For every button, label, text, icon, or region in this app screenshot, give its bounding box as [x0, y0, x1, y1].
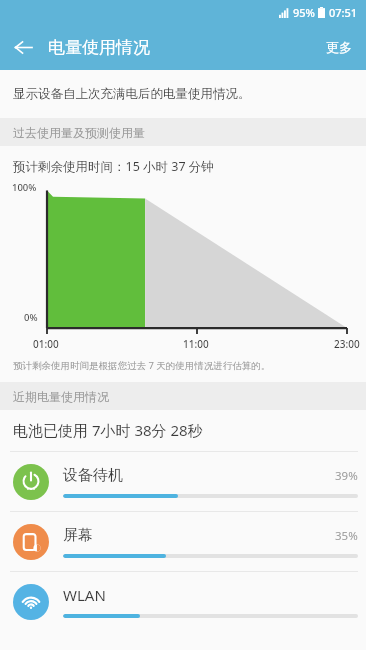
button[interactable]: WLAN — [0, 572, 366, 631]
staticText: 23:00 — [334, 337, 360, 351]
staticText: 0% — [24, 311, 38, 324]
staticText: 01:00 — [33, 337, 59, 351]
staticText: 显示设备自上次充满电后的电量使用情况。 — [13, 86, 251, 102]
staticText: 35% — [335, 528, 358, 544]
staticText: 电量使用情况 — [48, 37, 150, 58]
staticText: 100% — [12, 181, 37, 194]
button[interactable]: 更多 — [312, 24, 366, 70]
staticText: WLAN — [63, 585, 106, 605]
staticText: 近期电量使用情况 — [13, 389, 109, 404]
staticText: 设备待机 — [63, 466, 123, 485]
button[interactable]: Back — [0, 24, 46, 70]
staticText: 39% — [335, 468, 358, 484]
button[interactable]: 设备待机 — [0, 452, 366, 511]
staticText: 预计剩余使用时间：15 小时 37 分钟 — [13, 158, 214, 175]
staticText: 更多 — [326, 39, 352, 55]
staticText: 07:51 — [329, 5, 358, 20]
staticText: 过去使用量及预测使用量 — [13, 125, 145, 140]
staticText: 11:00 — [183, 337, 209, 351]
staticText: 预计剩余使用时间是根据您过去 7 天的使用情况进行估算的。 — [13, 359, 271, 372]
button[interactable]: 屏幕 — [0, 512, 366, 571]
staticText: 电池已使用 7小时 38分 28秒 — [13, 420, 203, 440]
staticText: 屏幕 — [63, 526, 93, 545]
staticText: 95% — [293, 5, 315, 20]
